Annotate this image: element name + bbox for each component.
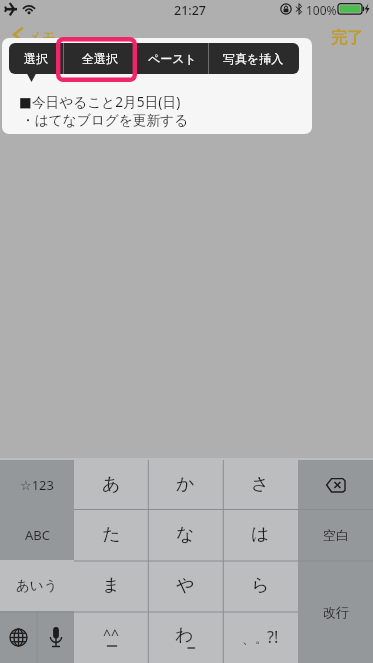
staticText: は <box>251 523 270 546</box>
button[interactable]: ペースト <box>137 43 208 74</box>
button[interactable]: ら <box>223 560 298 611</box>
button[interactable]: あいう <box>0 560 74 611</box>
button[interactable]: 改行 <box>298 560 373 663</box>
staticText: 写真を挿入 <box>223 51 284 66</box>
button[interactable]: 写真を挿入 <box>209 43 298 74</box>
button[interactable]: は <box>223 509 298 560</box>
button[interactable]: メモ <box>0 23 57 43</box>
staticText: ■今日やること2月5日(日) <box>19 92 181 111</box>
button[interactable]: か <box>148 460 223 509</box>
button[interactable]: 、。 <box>223 611 298 663</box>
button[interactable]: ☆123 <box>0 460 74 509</box>
staticText: わ <box>175 624 194 647</box>
staticText: ・はてなブログを更新する <box>21 112 189 129</box>
button[interactable]: 全選択 <box>64 43 136 74</box>
staticText: ま <box>102 574 121 597</box>
staticText: た <box>102 523 121 546</box>
button[interactable]: ま <box>74 560 148 611</box>
staticText: 全選択 <box>82 51 118 66</box>
button[interactable]: 完了 <box>331 28 373 48</box>
staticText: ?! <box>267 626 279 648</box>
staticText: ら <box>251 574 270 597</box>
button[interactable]: や <box>148 560 223 611</box>
button[interactable]: た <box>74 509 148 560</box>
button[interactable]: さ <box>223 460 298 509</box>
staticText: か <box>176 473 195 496</box>
button[interactable]: あ <box>74 460 148 509</box>
staticText: 21:27 <box>174 2 207 19</box>
staticText: 、。 <box>242 630 268 646</box>
button[interactable]: 選択 <box>9 43 63 74</box>
button[interactable]: Voice input <box>49 626 63 648</box>
button[interactable]: ^^ <box>74 611 148 663</box>
staticText: メモ <box>27 28 57 46</box>
staticText: ペースト <box>148 51 197 66</box>
staticText: 100% <box>306 2 337 18</box>
staticText: 選択 <box>24 51 48 66</box>
staticText: 改行 <box>323 604 349 620</box>
staticText: な <box>176 523 195 546</box>
staticText: ^^ <box>103 625 120 644</box>
button[interactable]: な <box>148 509 223 560</box>
button[interactable]: 空白 <box>298 509 373 560</box>
staticText: さ <box>251 473 270 496</box>
staticText: ABC <box>25 526 50 544</box>
button[interactable]: わ <box>148 611 223 663</box>
staticText: ☆123 <box>20 476 54 494</box>
staticText: あいう <box>16 577 58 594</box>
staticText: 空白 <box>323 527 349 543</box>
staticText: 完了 <box>331 28 363 48</box>
button[interactable]: ABC <box>0 509 74 560</box>
staticText: や <box>176 574 195 597</box>
button[interactable]: Change keyboard <box>9 628 28 647</box>
staticText: あ <box>102 473 121 496</box>
button[interactable]: Delete <box>326 477 346 493</box>
